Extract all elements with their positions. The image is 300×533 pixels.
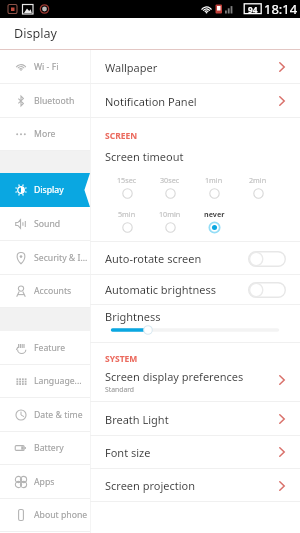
button[interactable]: Notification Panel [90,84,300,118]
staticText: More [34,128,56,140]
staticText: Automatic brightness [105,282,217,297]
staticText: Screen display preferences [105,369,244,384]
staticText: 18:14 [264,0,298,18]
staticText: 1min [205,175,223,185]
staticText: Standard [105,385,135,394]
button[interactable]: Accounts [0,274,90,308]
staticText: Accounts [34,285,72,297]
button[interactable]: Wi - Fi [0,50,90,84]
staticText: never [204,209,225,219]
button[interactable]: Apps [0,465,90,499]
staticText: 2min [249,175,267,185]
button[interactable]: Bluetooth [0,84,90,118]
staticText: 10min [159,209,181,219]
staticText: Display [34,184,64,196]
button[interactable]: Date & time [0,398,90,432]
staticText: Battery [34,442,64,454]
staticText: Feature [34,342,66,354]
button[interactable]: Automatic brightness [90,274,300,305]
staticText: Notification Panel [105,94,197,109]
button[interactable]: More [0,117,90,151]
button[interactable]: Breath Light [90,402,300,436]
staticText: 94 [248,4,258,14]
button[interactable]: 5min [107,209,147,239]
button[interactable]: 10min [150,209,190,239]
button[interactable]: Sound [0,207,90,241]
staticText: About phone [34,509,88,521]
staticText: Wallpaper [105,60,158,75]
staticText: SYSTEM [105,353,138,365]
button[interactable]: 1min [194,175,234,205]
button[interactable]: Language... [0,364,90,398]
staticText: Security & I... [34,252,88,264]
button[interactable]: Screen display preferences [90,365,300,402]
button[interactable]: Battery [0,431,90,465]
staticText: Display [14,25,57,42]
staticText: Sound [34,218,61,230]
staticText: Font size [105,445,151,460]
staticText: 5min [118,209,136,219]
button[interactable]: 15sec [107,175,147,205]
staticText: 30sec [160,175,180,185]
button[interactable]: 2min [238,175,278,205]
staticText: SCREEN [105,130,138,142]
staticText: Auto-rotate screen [105,251,202,266]
staticText: Bluetooth [34,95,75,107]
staticText: Screen projection [105,478,196,493]
button[interactable]: never [194,209,234,239]
button[interactable]: Feature [0,331,90,365]
staticText: Wi - Fi [34,61,59,73]
button[interactable]: 30sec [150,175,190,205]
staticText: 15sec [117,175,137,185]
staticText: Screen timeout [105,149,184,164]
button[interactable]: Font size [90,435,300,469]
staticText: Language... [34,375,82,387]
staticText: Breath Light [105,412,169,427]
button[interactable]: Screen projection [90,469,300,502]
button[interactable]: Display [0,173,90,207]
button[interactable]: About phone [0,498,90,532]
staticText: Apps [34,476,55,488]
staticText: Brightness [105,309,161,324]
staticText: Date & time [34,409,83,421]
button[interactable]: Wallpaper [90,50,300,84]
button[interactable]: Auto-rotate screen [90,242,300,275]
button[interactable]: Security & I... [0,241,90,275]
